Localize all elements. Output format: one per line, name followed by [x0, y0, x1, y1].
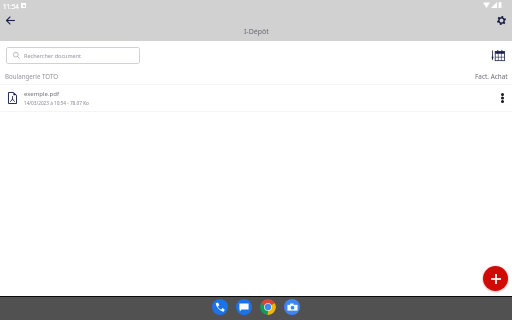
button[interactable]: Add document	[483, 266, 508, 291]
button[interactable]: Settings	[491, 10, 511, 30]
staticText: 14/03/2023 à 10:54 - 78.07 Ko	[24, 100, 89, 106]
button[interactable]: exemple.pdf	[0, 85, 512, 111]
staticText: I-Dépôt	[244, 27, 269, 37]
button[interactable]: Phone	[212, 299, 228, 315]
staticText: 11:54	[3, 2, 19, 10]
button[interactable]: More options	[494, 90, 510, 106]
staticText: Fact. Achat	[475, 72, 508, 81]
staticText: exemple.pdf	[24, 90, 59, 98]
staticText: Boulangerie TOTO	[5, 72, 59, 80]
button[interactable]: Messages	[236, 299, 252, 315]
staticText: Rechercher document	[24, 52, 82, 59]
button[interactable]: Camera	[284, 299, 300, 315]
button[interactable]: Rechercher document	[6, 47, 140, 64]
button[interactable]: Back	[0, 10, 21, 31]
button[interactable]: Sort by date	[488, 45, 508, 65]
button[interactable]: Chrome	[260, 299, 276, 315]
